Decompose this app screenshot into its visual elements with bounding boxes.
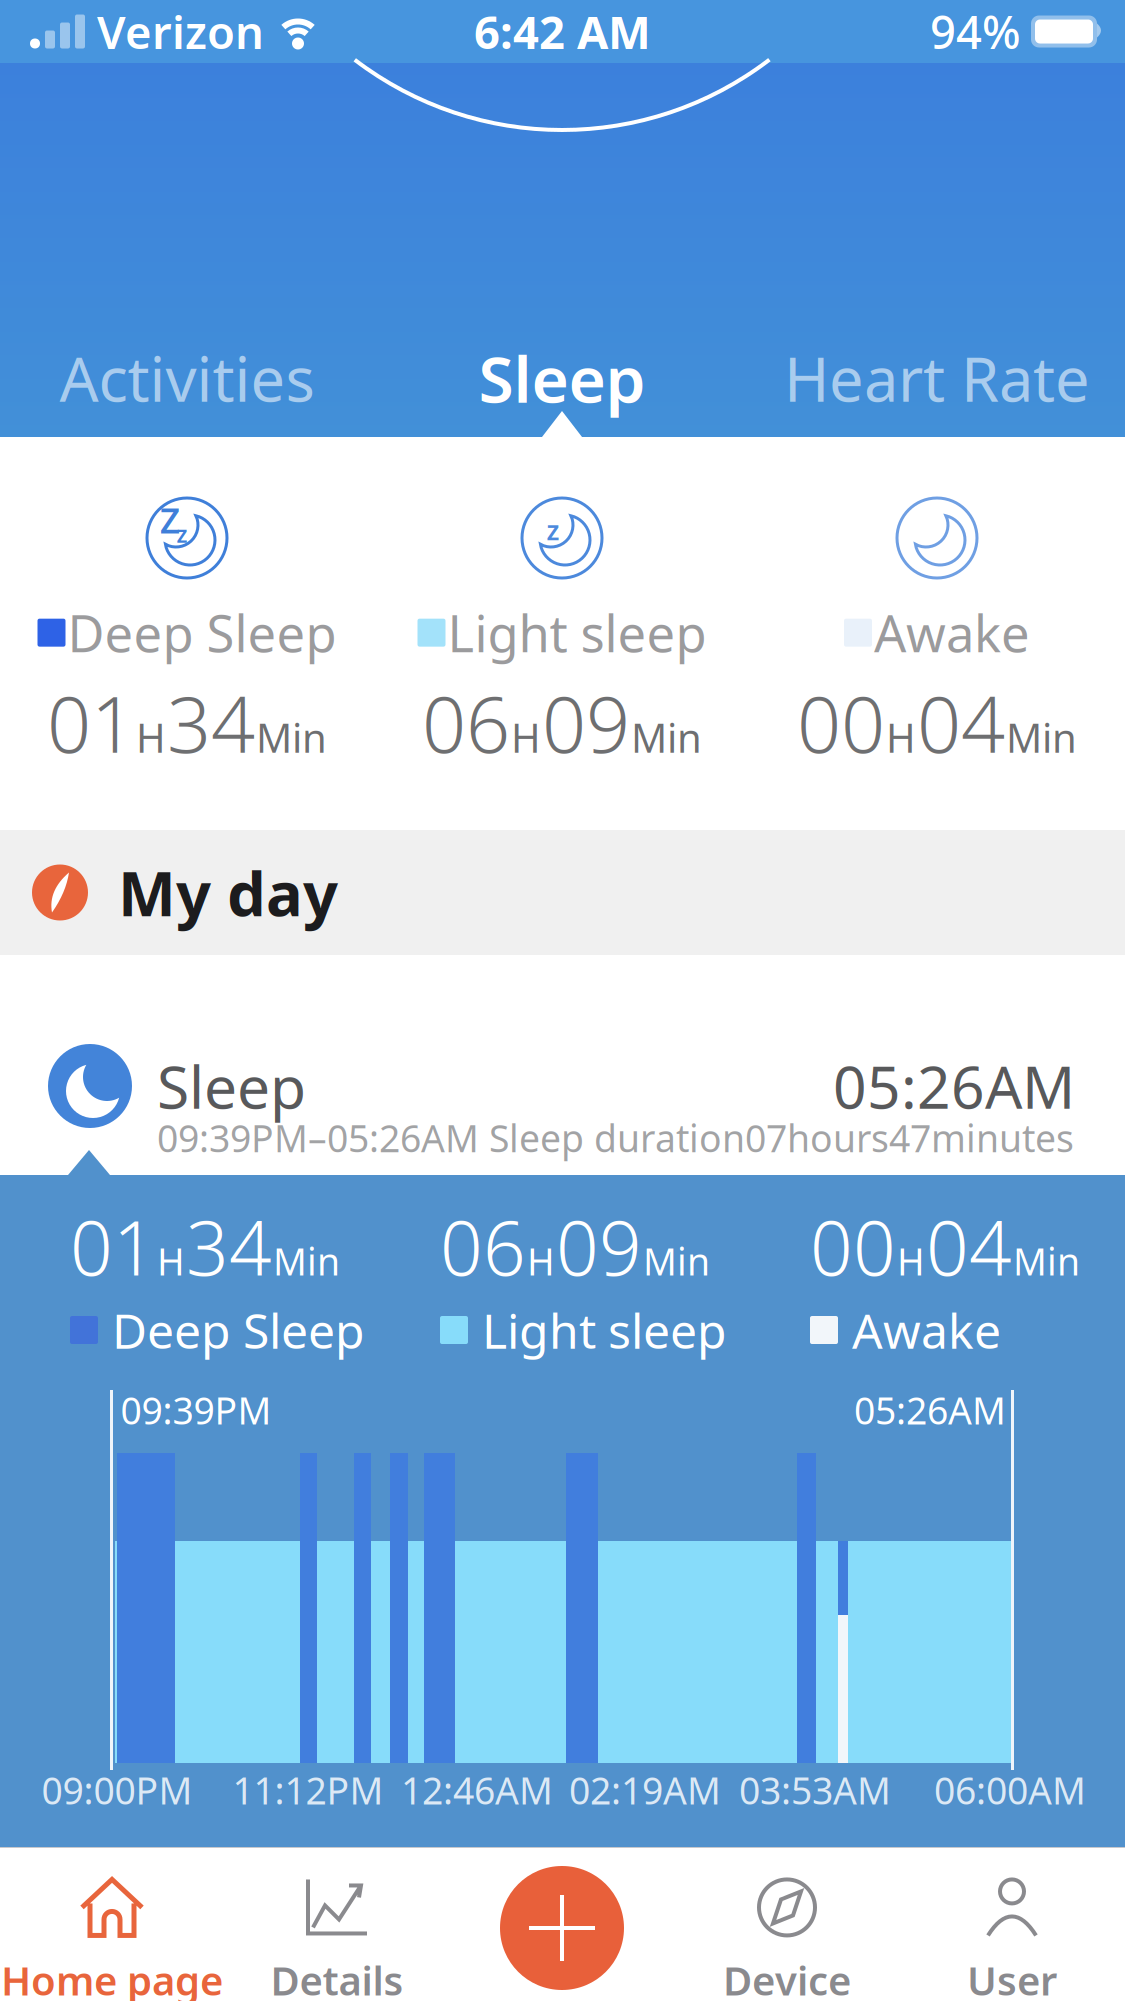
staticText: Min — [643, 1236, 710, 1286]
staticText: User — [967, 1953, 1057, 2001]
button[interactable]: Heart Rate — [749, 337, 1124, 419]
staticText: Device — [723, 1953, 851, 2001]
staticText: z — [546, 512, 559, 548]
staticText: Activities — [59, 337, 314, 419]
staticText: 06 — [422, 671, 510, 774]
staticText: H — [897, 1236, 925, 1286]
staticText: Home page — [1, 1953, 223, 2001]
staticText: Details — [270, 1953, 403, 2001]
staticText: Deep Sleep — [67, 599, 336, 666]
staticText: Deep Sleep — [112, 1298, 365, 1362]
staticText: 09 — [542, 671, 630, 774]
staticText: 09 — [556, 1197, 642, 1296]
button[interactable]: Sleep — [374, 335, 749, 420]
staticText: H — [157, 1236, 185, 1286]
staticText: 09:39PM — [120, 1385, 271, 1435]
button[interactable]: Details — [270, 1877, 403, 2001]
staticText: 94% — [930, 1, 1021, 62]
staticText: 04 — [926, 1197, 1012, 1296]
staticText: 06 — [440, 1197, 526, 1296]
staticText: Min — [273, 1236, 340, 1286]
staticText: 34 — [186, 1197, 272, 1296]
button[interactable]: Device — [723, 1877, 851, 2001]
staticText: Min — [1006, 711, 1077, 764]
staticText: H — [527, 1236, 555, 1286]
button[interactable]: User — [967, 1877, 1057, 2001]
button[interactable]: Home page — [1, 1877, 223, 2001]
staticText: 11:12PM — [232, 1765, 383, 1815]
staticText: 00 — [810, 1197, 896, 1296]
staticText: Z — [160, 497, 180, 543]
button[interactable]: Add — [500, 1866, 624, 1990]
staticText: 05:26AM — [854, 1385, 1006, 1435]
staticText: 12:46AM — [401, 1765, 553, 1815]
staticText: H — [886, 711, 916, 764]
staticText: H — [136, 711, 166, 764]
staticText: 00 — [797, 671, 885, 774]
staticText: Sleep — [157, 1047, 306, 1125]
staticText: Min — [1013, 1236, 1080, 1286]
staticText: 09:39PM–05:26AM Sleep duration07hours47m… — [157, 1113, 1074, 1163]
staticText: My day — [118, 852, 338, 933]
staticText: Heart Rate — [784, 337, 1090, 419]
staticText: Awake — [874, 599, 1030, 666]
staticText: H — [511, 711, 541, 764]
staticText: 02:19AM — [569, 1765, 721, 1815]
staticText: 01 — [47, 671, 135, 774]
staticText: 09:00PM — [41, 1765, 192, 1815]
staticText: 03:53AM — [739, 1765, 891, 1815]
staticText: 6:42 AM — [474, 1, 651, 62]
staticText: 34 — [167, 671, 255, 774]
staticText: Light sleep — [447, 599, 706, 666]
staticText: Min — [256, 711, 327, 764]
staticText: Verizon — [97, 1, 264, 62]
button[interactable]: Activities — [0, 337, 374, 419]
button[interactable]: Sleep — [0, 955, 1125, 1175]
staticText: Awake — [852, 1298, 1001, 1362]
staticText: Sleep — [478, 335, 645, 420]
staticText: 04 — [917, 671, 1005, 774]
staticText: Light sleep — [482, 1298, 727, 1362]
staticText: Min — [631, 711, 702, 764]
staticText: 06:00AM — [934, 1765, 1086, 1815]
staticText: z — [176, 519, 187, 549]
staticText: 05:26AM — [833, 1047, 1075, 1125]
staticText: 01 — [70, 1197, 156, 1296]
